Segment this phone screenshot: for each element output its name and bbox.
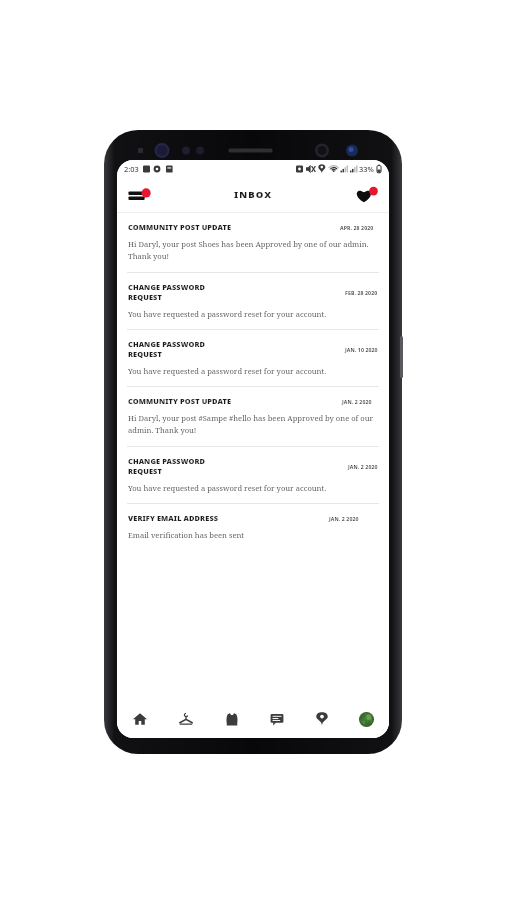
button[interactable]: VERIFY EMAIL ADDRESS [117,504,389,550]
staticText: You have requested a password reset for … [128,483,378,493]
staticText: FEB. 28 2020 [345,289,378,296]
staticText: COMMUNITY POST UPDATE [128,396,232,406]
button[interactable]: COMMUNITY POST UPDATE [117,387,389,446]
staticText: You have requested a password reset for … [128,366,378,376]
button[interactable]: CHANGE PASSWORD REQUEST [117,273,389,329]
button[interactable]: Home [117,700,163,738]
button[interactable]: Menu [123,181,157,209]
staticText: Hi Daryl, your post #Sampe #hello has be… [128,413,378,436]
button[interactable]: Favorites [351,181,383,209]
staticText: CHANGE PASSWORD REQUEST [128,456,238,476]
staticText: APR. 28 2020 [340,224,374,231]
staticText: You have requested a password reset for … [128,309,378,319]
staticText: CHANGE PASSWORD REQUEST [128,339,236,359]
button[interactable]: Shop [209,700,254,738]
button[interactable]: CHANGE PASSWORD REQUEST [117,330,389,386]
staticText: 33% [359,164,374,174]
button[interactable]: Messages [254,700,299,738]
button[interactable]: Profile [344,700,389,738]
button[interactable]: Places [299,700,344,738]
staticText: 2:03 [124,164,139,174]
button[interactable]: CHANGE PASSWORD REQUEST [117,447,389,503]
button[interactable]: Closet [163,700,209,738]
staticText: COMMUNITY POST UPDATE [128,222,232,232]
staticText: VERIFY EMAIL ADDRESS [128,513,219,523]
staticText: JAN. 2 2020 [348,463,378,470]
staticText: JAN. 2 2020 [342,398,372,405]
staticText: INBOX [234,188,273,201]
staticText: CHANGE PASSWORD REQUEST [128,282,236,302]
staticText: JAN. 10 2020 [345,346,378,353]
staticText: Hi Daryl, your post Shoes has been Appro… [128,239,378,262]
button[interactable]: COMMUNITY POST UPDATE [117,213,389,272]
staticText: Email verification has been sent [128,530,378,540]
staticText: JAN. 2 2020 [329,515,359,522]
